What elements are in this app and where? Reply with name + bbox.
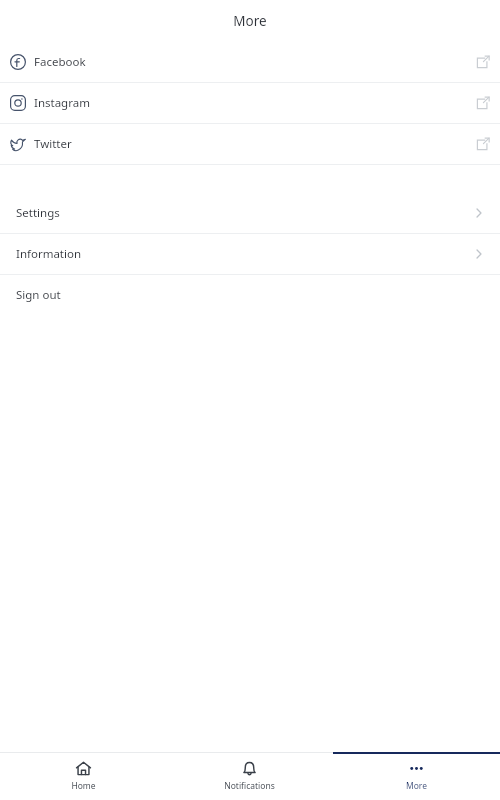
button[interactable]: Settings [0,193,500,233]
staticText: More [406,780,427,792]
button[interactable]: Facebook [0,42,500,82]
button[interactable]: Sign out [0,275,500,315]
staticText: Twitter [34,136,72,152]
staticText: Home [71,780,96,792]
staticText: Settings [16,205,60,221]
other: Open Twitter link [476,137,490,151]
button[interactable]: Information [0,234,500,274]
button[interactable]: Instagram [0,83,500,123]
staticText: Notifications [224,780,275,792]
staticText: More [233,12,267,30]
staticText: Facebook [34,54,86,70]
button[interactable]: More [333,752,500,800]
other: Open Facebook link [476,55,490,69]
button[interactable]: Home [0,752,166,800]
staticText: Sign out [16,287,61,303]
staticText: Instagram [34,95,90,111]
button[interactable]: Notifications [166,752,333,800]
button[interactable]: Twitter [0,124,500,164]
staticText: Information [16,246,82,262]
other: Open Instagram link [476,96,490,110]
